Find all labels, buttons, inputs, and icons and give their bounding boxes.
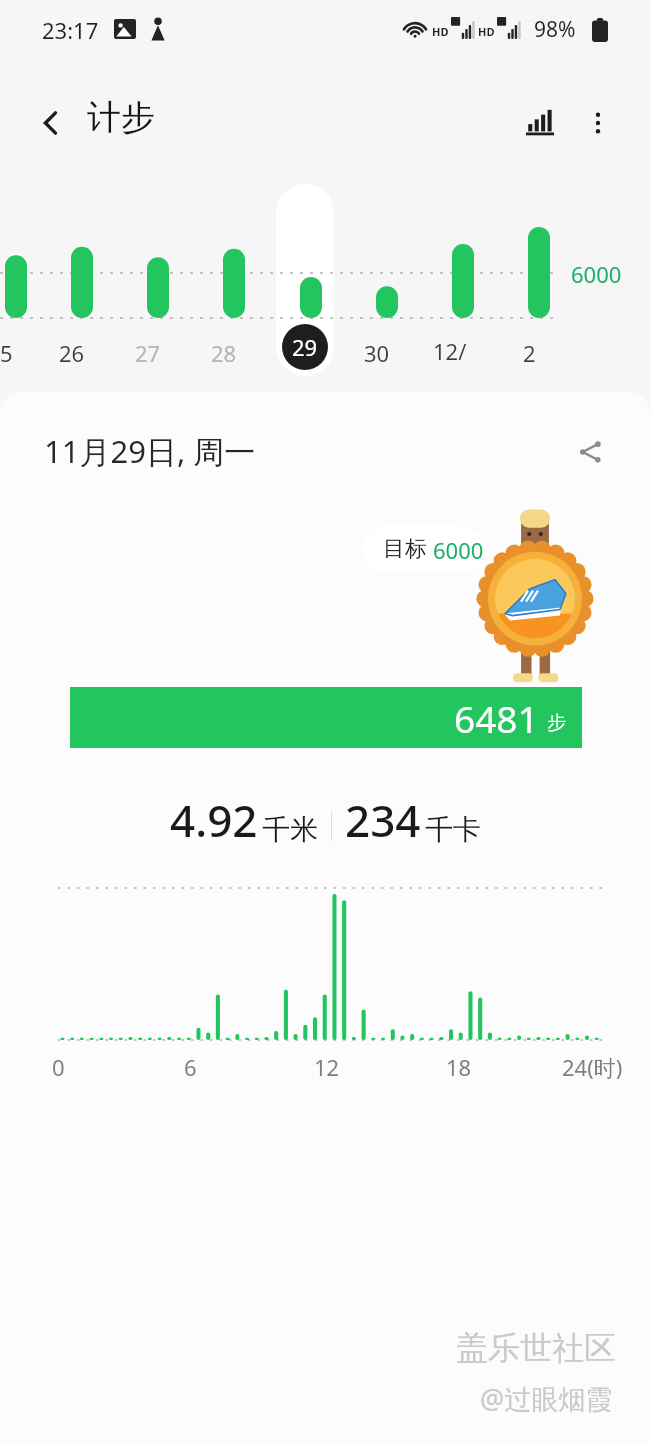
button[interactable]: 12/1 (433, 336, 473, 370)
staticText: @过眼烟霞 (480, 1380, 613, 1417)
staticText: 6 (184, 1052, 197, 1082)
button[interactable]: 30 (357, 336, 397, 370)
button[interactable]: 2 (509, 336, 549, 370)
staticText: 18 (446, 1052, 472, 1082)
staticText: 2 (523, 338, 536, 368)
button[interactable]: Back (22, 94, 80, 152)
button[interactable]: 6481 (70, 687, 582, 748)
staticText: 千米 (262, 812, 318, 847)
staticText: 29 (292, 332, 318, 362)
button[interactable]: More options (569, 94, 627, 152)
staticText: 30 (364, 338, 390, 368)
staticText: HD (432, 24, 449, 39)
staticText: HD (478, 24, 495, 39)
staticText: 12/1 (433, 336, 473, 370)
staticText: 步 (547, 711, 566, 735)
button[interactable]: 5 (0, 336, 26, 370)
staticText: 4.92 (170, 790, 258, 850)
button[interactable]: 27 (128, 336, 168, 370)
staticText: 24(时) (562, 1052, 623, 1082)
staticText: 计步 (87, 96, 155, 139)
staticText: 5 (0, 338, 13, 368)
staticText: 28 (211, 338, 237, 368)
staticText: 6000 (433, 535, 484, 565)
staticText: 27 (135, 338, 161, 368)
staticText: 234 (345, 790, 421, 850)
button[interactable]: Share (562, 424, 618, 480)
staticText: 目标 (383, 535, 427, 563)
button[interactable]: 29 (282, 324, 328, 370)
staticText: 11月29日, 周一 (44, 430, 256, 472)
button[interactable]: Statistics (511, 94, 569, 152)
staticText: 0 (52, 1052, 65, 1082)
staticText: 23:17 (42, 15, 99, 45)
staticText: 6000 (571, 259, 622, 289)
button[interactable] (276, 184, 334, 376)
staticText: 盖乐世社区 (456, 1328, 616, 1368)
staticText: 6481 (454, 693, 539, 743)
staticText: 12 (314, 1052, 340, 1082)
staticText: 26 (59, 338, 85, 368)
button[interactable]: 26 (52, 336, 92, 370)
staticText: 千卡 (425, 812, 481, 847)
staticText: 98% (534, 15, 576, 44)
button[interactable]: 28 (204, 336, 244, 370)
